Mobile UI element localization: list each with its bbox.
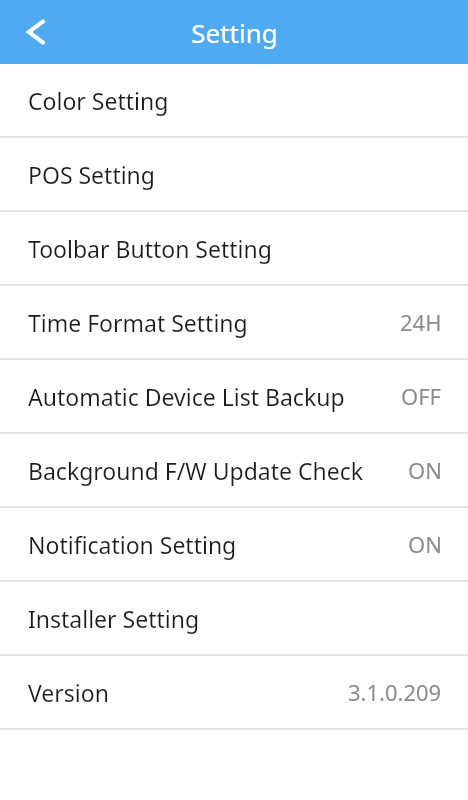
button[interactable]: Notification Setting [0, 508, 468, 580]
button[interactable]: Color Setting [0, 64, 468, 136]
button[interactable]: Version [0, 656, 468, 728]
staticText: Time Format Setting [28, 307, 248, 338]
staticText: 24H [400, 307, 442, 337]
staticText: Installer Setting [28, 603, 200, 634]
button[interactable]: Installer Setting [0, 582, 468, 654]
staticText: Automatic Device List Backup [28, 381, 345, 412]
button[interactable]: Back [14, 10, 58, 54]
staticText: Toolbar Button Setting [28, 233, 272, 264]
button[interactable]: Automatic Device List Backup [0, 360, 468, 432]
staticText: Setting [191, 15, 278, 50]
button[interactable]: Toolbar Button Setting [0, 212, 468, 284]
staticText: Version [28, 677, 109, 708]
staticText: Notification Setting [28, 529, 237, 560]
button[interactable]: Background F/W Update Check [0, 434, 468, 506]
staticText: ON [408, 455, 442, 485]
staticText: Color Setting [28, 85, 169, 116]
button[interactable]: Time Format Setting [0, 286, 468, 358]
staticText: 3.1.0.209 [348, 677, 442, 707]
staticText: POS Setting [28, 159, 155, 190]
button[interactable]: POS Setting [0, 138, 468, 210]
staticText: OFF [401, 381, 442, 411]
staticText: ON [408, 529, 442, 559]
staticText: Background F/W Update Check [28, 455, 363, 486]
